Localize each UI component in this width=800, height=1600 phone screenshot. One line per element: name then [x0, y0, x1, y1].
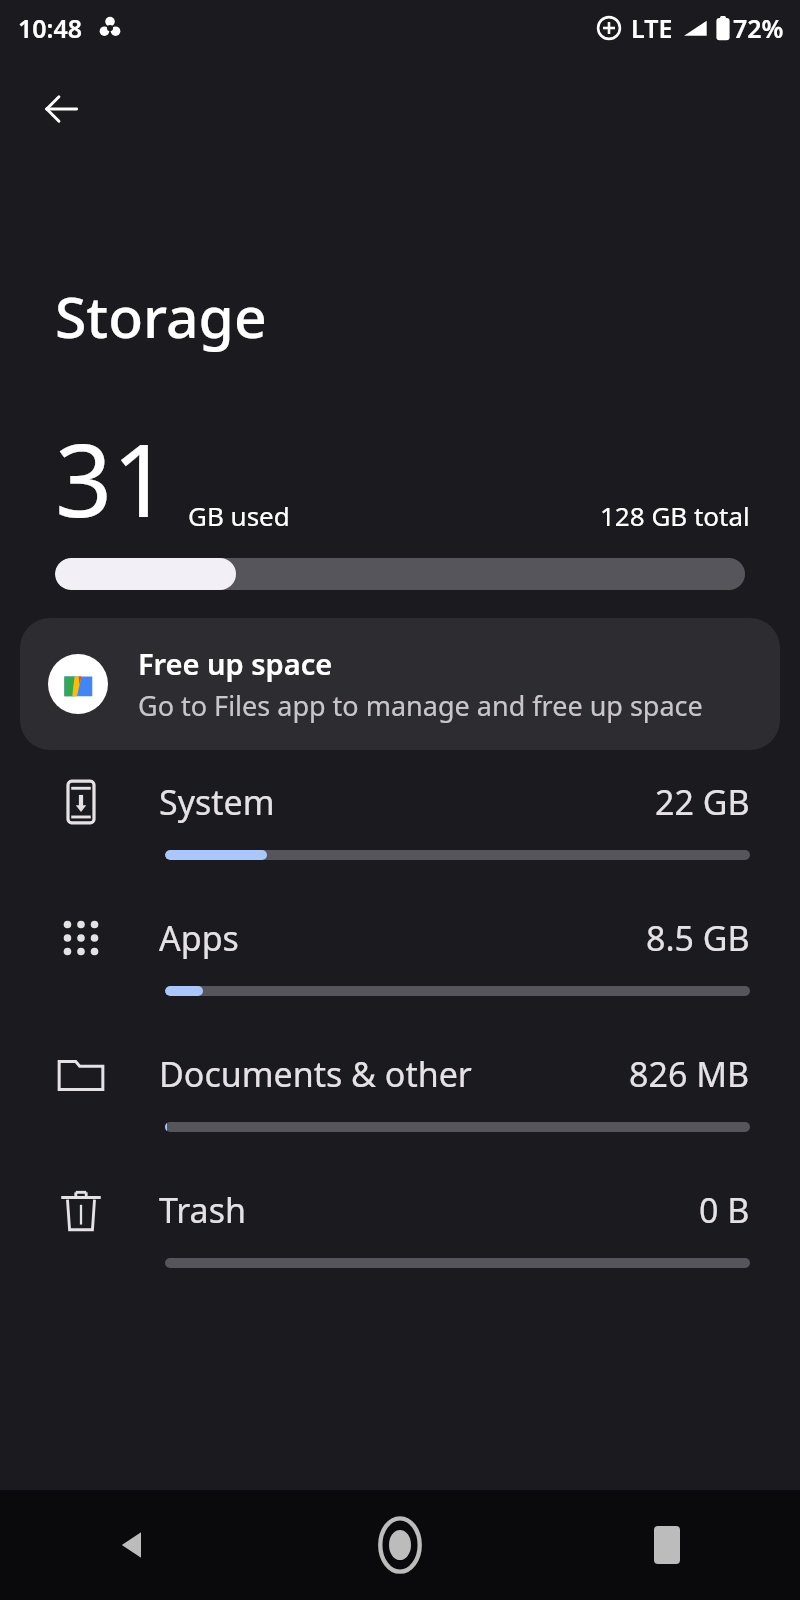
- staticText: Trash: [159, 1187, 246, 1233]
- staticText: 8.5 GB: [646, 915, 750, 961]
- staticText: Documents & other: [159, 1051, 472, 1097]
- staticText: Go to Files app to manage and free up sp…: [138, 687, 703, 724]
- button[interactable]: Trash: [0, 1184, 800, 1320]
- staticText: 22 GB: [655, 779, 750, 825]
- button[interactable]: Recents: [533, 1490, 800, 1600]
- staticText: 10:48: [18, 11, 83, 45]
- staticText: 31: [55, 410, 170, 546]
- staticText: 826 MB: [629, 1051, 750, 1097]
- staticText: LTE: [631, 11, 673, 45]
- button[interactable]: System: [0, 776, 800, 912]
- staticText: Apps: [159, 915, 239, 961]
- staticText: Free up space: [138, 644, 333, 683]
- button[interactable]: Free up space: [20, 618, 780, 750]
- button[interactable]: Apps: [0, 912, 800, 1048]
- staticText: System: [159, 779, 275, 825]
- staticText: 128 GB total: [600, 498, 750, 533]
- staticText: 0 B: [699, 1187, 750, 1233]
- button[interactable]: Back: [0, 1490, 266, 1600]
- button[interactable]: Home: [266, 1490, 533, 1600]
- staticText: 72%: [733, 11, 784, 45]
- button[interactable]: Documents & other: [0, 1048, 800, 1184]
- staticText: Storage: [55, 277, 267, 355]
- staticText: GB used: [188, 498, 290, 533]
- button[interactable]: Back: [28, 76, 94, 142]
